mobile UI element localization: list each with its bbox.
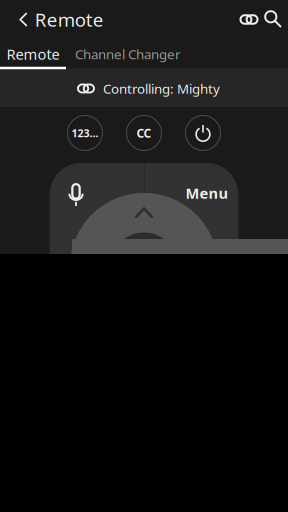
button[interactable]: Up bbox=[124, 201, 164, 225]
button[interactable]: Power bbox=[185, 115, 220, 150]
button[interactable]: Search bbox=[256, 0, 288, 38]
button[interactable]: Link devices bbox=[231, 0, 267, 38]
button[interactable]: Remote bbox=[0, 39, 66, 68]
staticText: Remote bbox=[35, 7, 104, 32]
button[interactable]: Menu bbox=[177, 173, 237, 213]
button[interactable]: Remote bbox=[49, 163, 238, 293]
staticText: Channel Changer bbox=[75, 45, 181, 63]
staticText: Menu bbox=[185, 183, 228, 203]
staticText: Controlling: Mighty bbox=[103, 80, 220, 97]
button[interactable]: Number pad bbox=[67, 115, 102, 150]
button[interactable]: Remote bbox=[0, 0, 114, 38]
button[interactable]: Closed captions bbox=[126, 115, 161, 150]
staticText: Remote bbox=[6, 44, 59, 64]
button[interactable]: Voice search bbox=[54, 175, 98, 215]
staticText: 123... bbox=[71, 126, 98, 140]
button[interactable]: Controlling: Mighty bbox=[5, 70, 288, 107]
button[interactable]: Channel Changer bbox=[73, 39, 183, 68]
staticText: CC bbox=[136, 125, 151, 141]
